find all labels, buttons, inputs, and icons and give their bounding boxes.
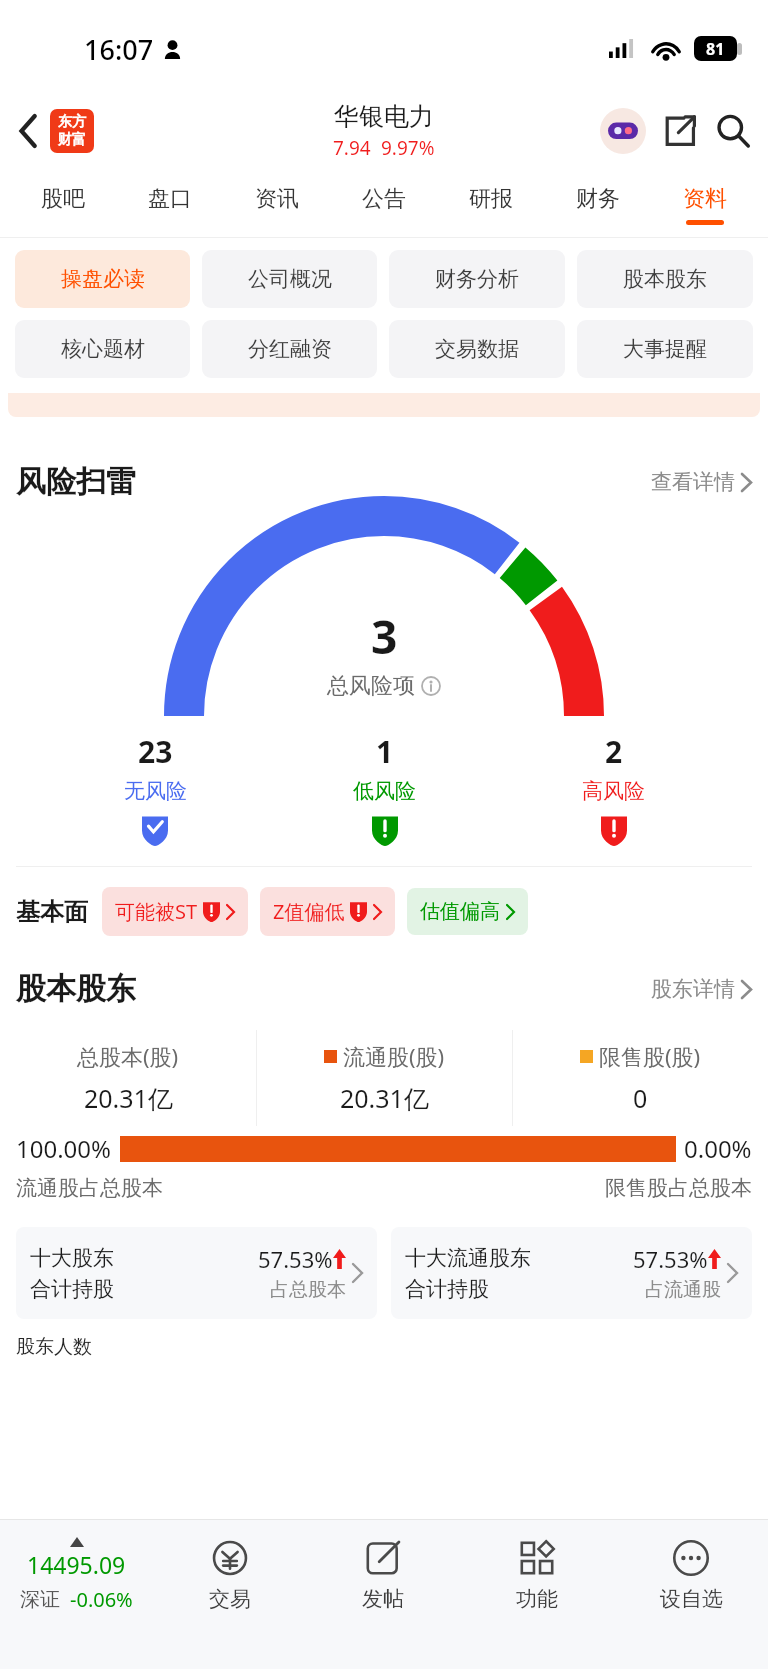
staticText: 十大流通股东 xyxy=(405,1245,531,1271)
staticText: 股本股东 xyxy=(623,266,707,292)
staticText: 风险扫雷 xyxy=(16,463,136,501)
staticText: 公司概况 xyxy=(248,266,332,292)
staticText: 0.00% xyxy=(684,1132,752,1165)
staticText: 合计持股 xyxy=(30,1276,114,1302)
staticText: 合计持股 xyxy=(405,1276,489,1302)
staticText: 操盘必读 xyxy=(61,266,145,292)
button[interactable]: 可能被ST xyxy=(102,887,248,936)
staticText: 股东详情 xyxy=(651,976,735,1002)
staticText: 占总股本 xyxy=(270,1278,346,1302)
button[interactable]: 研报 xyxy=(437,172,544,238)
staticText: 分红融资 xyxy=(248,336,332,362)
staticText: 资讯 xyxy=(255,185,299,213)
staticText: 功能 xyxy=(516,1586,558,1612)
staticText: 低风险 xyxy=(353,778,416,804)
button[interactable]: 交易 xyxy=(153,1520,306,1630)
button[interactable]: 核心题材 xyxy=(15,320,190,378)
staticText: 财务分析 xyxy=(435,266,519,292)
button[interactable]: 公告 xyxy=(330,172,437,238)
staticText: 股东人数 xyxy=(16,1335,92,1359)
staticText: 盘口 xyxy=(148,185,192,213)
staticText: 20.31亿 xyxy=(340,1081,429,1115)
button[interactable]: 分红融资 xyxy=(202,320,377,378)
staticText: 81 xyxy=(706,38,725,60)
staticText: 57.53% xyxy=(633,1244,708,1274)
button[interactable]: 设自选 xyxy=(614,1520,768,1630)
button[interactable]: 估值偏高 xyxy=(407,888,528,935)
button[interactable]: 大事提醒 xyxy=(577,320,753,378)
staticText: 1 xyxy=(376,731,394,772)
button[interactable]: 14495.09 xyxy=(0,1537,153,1613)
staticText: 估值偏高 xyxy=(420,899,500,924)
button[interactable]: 功能 xyxy=(460,1520,614,1630)
staticText: 23 xyxy=(138,731,173,772)
button[interactable]: 操盘必读 xyxy=(15,250,190,308)
staticText: 无风险 xyxy=(124,778,187,804)
button[interactable]: 交易数据 xyxy=(389,320,565,378)
staticText: 流通股(股) xyxy=(343,1041,445,1071)
button[interactable]: 资讯 xyxy=(223,172,330,238)
button[interactable]: 1 xyxy=(270,731,499,846)
button[interactable]: 财务分析 xyxy=(389,250,565,308)
button[interactable]: 十大流通股东 xyxy=(391,1227,752,1319)
button[interactable]: 盘口 xyxy=(116,172,223,238)
staticText: 股本股东 xyxy=(16,970,136,1008)
button[interactable]: 十大股东 xyxy=(16,1227,377,1319)
staticText: 0 xyxy=(633,1081,648,1115)
staticText: 深证 xyxy=(20,1587,60,1612)
staticText: 57.53% xyxy=(258,1244,333,1274)
staticText: 16:07 xyxy=(84,31,154,68)
button[interactable]: 2 xyxy=(499,731,728,846)
button[interactable]: 资料 xyxy=(651,172,758,238)
staticText: 交易 xyxy=(209,1586,251,1612)
staticText: 高风险 xyxy=(582,778,645,804)
staticText: 限售股占总股本 xyxy=(605,1175,752,1201)
staticText: 设自选 xyxy=(660,1586,723,1612)
button[interactable]: 股吧 xyxy=(10,172,116,238)
button[interactable]: Back xyxy=(14,103,100,159)
staticText: 100.00% xyxy=(16,1132,112,1165)
staticText: 总风险项 xyxy=(327,672,415,700)
staticText: 交易数据 xyxy=(435,336,519,362)
staticText: 限售股(股) xyxy=(599,1041,701,1071)
staticText: 总股本(股) xyxy=(77,1041,179,1071)
staticText: 7.94 xyxy=(333,135,371,161)
staticText: 可能被ST xyxy=(115,898,198,925)
button[interactable]: Z值偏低 xyxy=(260,887,395,936)
staticText: 股吧 xyxy=(41,185,85,213)
staticText: 十大股东 xyxy=(30,1245,114,1271)
staticText: 东方 xyxy=(58,113,86,131)
staticText: 资料 xyxy=(683,185,727,213)
button[interactable]: 公司概况 xyxy=(202,250,377,308)
staticText: 公告 xyxy=(362,185,406,213)
button[interactable]: Search xyxy=(716,114,750,148)
staticText: 研报 xyxy=(469,185,513,213)
staticText: 9.97% xyxy=(381,135,435,161)
staticText: 发帖 xyxy=(362,1586,404,1612)
staticText: 流通股占总股本 xyxy=(16,1175,163,1201)
button[interactable]: Assistant xyxy=(600,108,646,154)
staticText: -0.06% xyxy=(70,1586,133,1613)
button[interactable]: 股东详情 xyxy=(651,976,752,1002)
staticText: Z值偏低 xyxy=(273,898,345,925)
button[interactable]: 23 xyxy=(40,731,270,846)
staticText: 财富 xyxy=(58,131,86,149)
staticText: 2 xyxy=(605,731,623,772)
button[interactable]: 查看详情 xyxy=(651,469,752,495)
staticText: 核心题材 xyxy=(61,336,145,362)
button[interactable]: 股本股东 xyxy=(577,250,753,308)
staticText: 华银电力 xyxy=(334,101,434,132)
staticText: 3 xyxy=(371,605,398,668)
staticText: 查看详情 xyxy=(651,469,735,495)
staticText: 20.31亿 xyxy=(84,1081,173,1115)
staticText: 大事提醒 xyxy=(623,336,707,362)
staticText: 占流通股 xyxy=(645,1278,721,1302)
staticText: 基本面 xyxy=(16,897,88,927)
button[interactable]: 财务 xyxy=(544,172,651,238)
button[interactable]: 发帖 xyxy=(306,1520,460,1630)
staticText: 财务 xyxy=(576,185,620,213)
staticText: 14495.09 xyxy=(27,1549,126,1580)
button[interactable]: Share xyxy=(664,115,696,147)
